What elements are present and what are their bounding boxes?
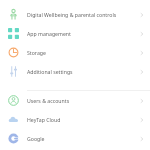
staticText: Users & accounts: [27, 97, 133, 104]
staticText: HeyTap Cloud: [27, 116, 133, 123]
staticText: Storage: [27, 49, 133, 56]
staticText: Google: [27, 135, 133, 142]
button[interactable]: Storage: [0, 43, 150, 62]
button[interactable]: HeyTap Cloud: [0, 110, 150, 129]
button[interactable]: Users & accounts: [0, 91, 150, 110]
staticText: Additional settings: [27, 68, 133, 75]
button[interactable]: Digital Wellbeing & parental controls: [0, 5, 150, 24]
button[interactable]: Google: [0, 129, 150, 148]
button[interactable]: Additional settings: [0, 62, 150, 81]
staticText: App management: [27, 30, 133, 37]
button[interactable]: App management: [0, 24, 150, 43]
staticText: Digital Wellbeing & parental controls: [27, 11, 133, 18]
